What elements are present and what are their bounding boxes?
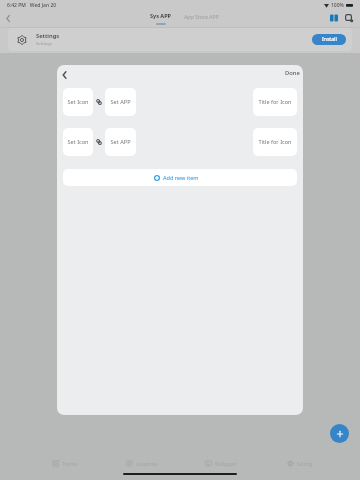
button[interactable]: Back bbox=[1, 11, 15, 25]
staticText: Settings bbox=[36, 41, 52, 47]
button[interactable]: Wallpaper bbox=[181, 460, 260, 467]
staticText: Livephoto bbox=[136, 461, 158, 467]
staticText: Wallpaper bbox=[215, 461, 237, 467]
button[interactable]: App Store APP bbox=[179, 15, 224, 22]
button[interactable]: Set APP bbox=[105, 88, 136, 116]
button[interactable]: Set APP bbox=[105, 128, 136, 156]
staticText: Set Icon bbox=[67, 138, 89, 146]
button[interactable]: Manual bbox=[328, 12, 340, 24]
button[interactable]: Setting bbox=[260, 460, 339, 467]
button[interactable]: Add new item bbox=[63, 169, 297, 186]
button[interactable]: Set Icon bbox=[63, 128, 93, 156]
staticText: Title for Icon bbox=[258, 138, 292, 146]
staticText: Title for Icon bbox=[258, 98, 292, 106]
staticText: Install bbox=[322, 36, 337, 43]
staticText: Setting bbox=[297, 461, 313, 467]
button[interactable]: Back bbox=[58, 69, 70, 81]
staticText: Theme bbox=[62, 461, 77, 467]
button[interactable]: Set Icon bbox=[63, 88, 93, 116]
staticText: 6:42 PM Wed Jan 20 bbox=[7, 2, 57, 9]
button[interactable]: Add bbox=[330, 424, 349, 443]
staticText: Done bbox=[285, 69, 300, 77]
button[interactable]: Install bbox=[312, 34, 346, 45]
button[interactable]: Done bbox=[280, 71, 303, 79]
staticText: Add new item bbox=[163, 174, 199, 181]
button[interactable]: Export bbox=[343, 12, 355, 24]
button[interactable]: Livephoto bbox=[103, 460, 181, 467]
staticText: Set APP bbox=[110, 138, 131, 146]
button[interactable]: Settings bbox=[8, 28, 352, 51]
staticText: 100% bbox=[331, 2, 344, 9]
button[interactable]: Title for Icon bbox=[253, 128, 297, 156]
button[interactable]: Title for Icon bbox=[253, 88, 297, 116]
button[interactable]: Theme bbox=[25, 460, 103, 467]
staticText: App Store APP bbox=[184, 13, 219, 20]
staticText: Settings bbox=[36, 32, 60, 40]
staticText: Set Icon bbox=[67, 98, 89, 106]
button[interactable]: Sys APP bbox=[145, 12, 176, 25]
staticText: Set APP bbox=[110, 98, 131, 106]
staticText: Sys APP bbox=[150, 12, 171, 19]
